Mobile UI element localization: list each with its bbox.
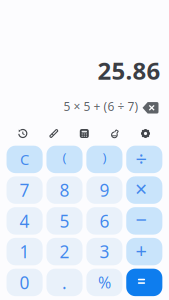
- button[interactable]: ×: [126, 176, 162, 204]
- button[interactable]: Unit converter: [49, 129, 58, 138]
- staticText: 4: [20, 209, 30, 232]
- staticText: 1: [20, 240, 30, 263]
- button[interactable]: 8: [46, 176, 83, 204]
- button[interactable]: +: [126, 238, 162, 265]
- button[interactable]: ): [86, 146, 122, 173]
- button[interactable]: −: [126, 207, 162, 235]
- staticText: 0: [20, 271, 30, 294]
- button[interactable]: Scientific mode: [110, 129, 119, 138]
- staticText: C: [20, 150, 29, 169]
- staticText: +: [136, 237, 147, 264]
- button[interactable]: Keypad: [80, 129, 89, 138]
- button[interactable]: 1: [7, 238, 43, 265]
- staticText: ÷: [136, 145, 147, 171]
- button[interactable]: [126, 269, 162, 296]
- button[interactable]: History: [18, 129, 27, 138]
- staticText: 6: [99, 209, 109, 232]
- staticText: 25.86: [97, 55, 160, 86]
- button[interactable]: 3: [86, 238, 122, 265]
- staticText: %: [98, 272, 111, 293]
- staticText: 5: [59, 209, 69, 232]
- button[interactable]: 7: [7, 176, 43, 204]
- staticText: 5 × 5 + (6 ÷ 7): [63, 98, 138, 114]
- staticText: −: [136, 206, 147, 233]
- button[interactable]: .: [46, 269, 83, 296]
- button[interactable]: (: [46, 146, 83, 173]
- staticText: 7: [20, 179, 30, 202]
- button[interactable]: 4: [7, 207, 43, 235]
- staticText: ): [102, 148, 106, 166]
- staticText: .: [62, 271, 67, 294]
- button[interactable]: 0: [7, 269, 43, 296]
- button[interactable]: C: [7, 146, 43, 173]
- button[interactable]: Settings: [141, 129, 150, 138]
- staticText: (: [62, 148, 66, 166]
- button[interactable]: 6: [86, 207, 122, 235]
- staticText: ×: [135, 175, 147, 203]
- staticText: 3: [99, 240, 109, 263]
- button[interactable]: Backspace: [142, 102, 158, 113]
- button[interactable]: 5: [46, 207, 83, 235]
- button[interactable]: 9: [86, 176, 122, 204]
- button[interactable]: 2: [46, 238, 83, 265]
- staticText: 9: [99, 179, 109, 202]
- staticText: 2: [59, 240, 69, 263]
- button[interactable]: %: [86, 269, 122, 296]
- staticText: 8: [59, 179, 69, 202]
- button[interactable]: ÷: [126, 146, 162, 173]
